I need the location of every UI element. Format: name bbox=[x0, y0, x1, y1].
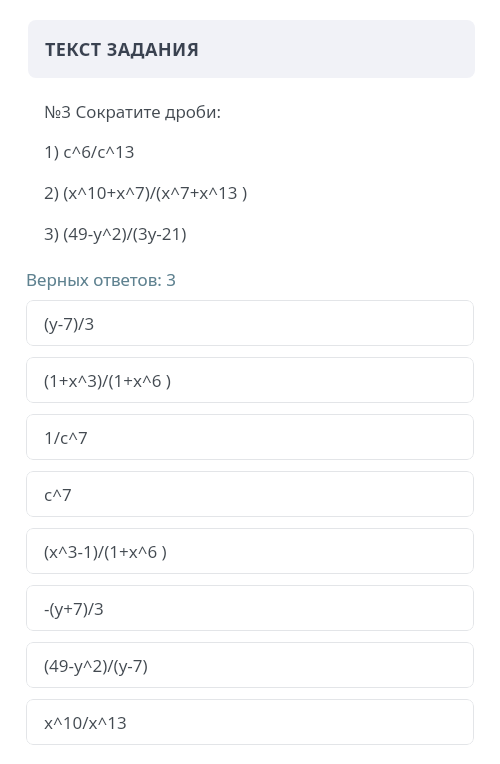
staticText: x^10/x^13 bbox=[44, 711, 127, 734]
staticText: 1/c^7 bbox=[44, 426, 88, 449]
staticText: 3) (49-y^2)/(3y-21) bbox=[44, 222, 187, 245]
button[interactable]: 1/c^7 bbox=[26, 414, 474, 460]
button[interactable]: ТЕКСТ ЗАДАНИЯ bbox=[28, 20, 475, 78]
staticText: (1+x^3)/(1+x^6 ) bbox=[44, 369, 171, 392]
staticText: c^7 bbox=[44, 483, 72, 506]
button[interactable]: x^10/x^13 bbox=[26, 699, 474, 745]
staticText: (y-7)/3 bbox=[44, 312, 95, 335]
staticText: -(y+7)/3 bbox=[44, 597, 104, 620]
staticText: Верных ответов: 3 bbox=[26, 268, 176, 291]
button[interactable]: c^7 bbox=[26, 471, 474, 517]
staticText: ТЕКСТ ЗАДАНИЯ bbox=[45, 37, 200, 62]
button[interactable]: -(y+7)/3 bbox=[26, 585, 474, 631]
staticText: 2) (x^10+x^7)/(x^7+x^13 ) bbox=[44, 181, 248, 204]
button[interactable]: (y-7)/3 bbox=[26, 300, 474, 346]
staticText: (x^3-1)/(1+x^6 ) bbox=[44, 540, 167, 563]
button[interactable]: (49-y^2)/(y-7) bbox=[26, 642, 474, 688]
staticText: №3 Сократите дроби: bbox=[44, 100, 222, 123]
button[interactable]: (x^3-1)/(1+x^6 ) bbox=[26, 528, 474, 574]
button[interactable]: (1+x^3)/(1+x^6 ) bbox=[26, 357, 474, 403]
staticText: 1) c^6/c^13 bbox=[44, 140, 135, 163]
staticText: (49-y^2)/(y-7) bbox=[44, 654, 148, 677]
